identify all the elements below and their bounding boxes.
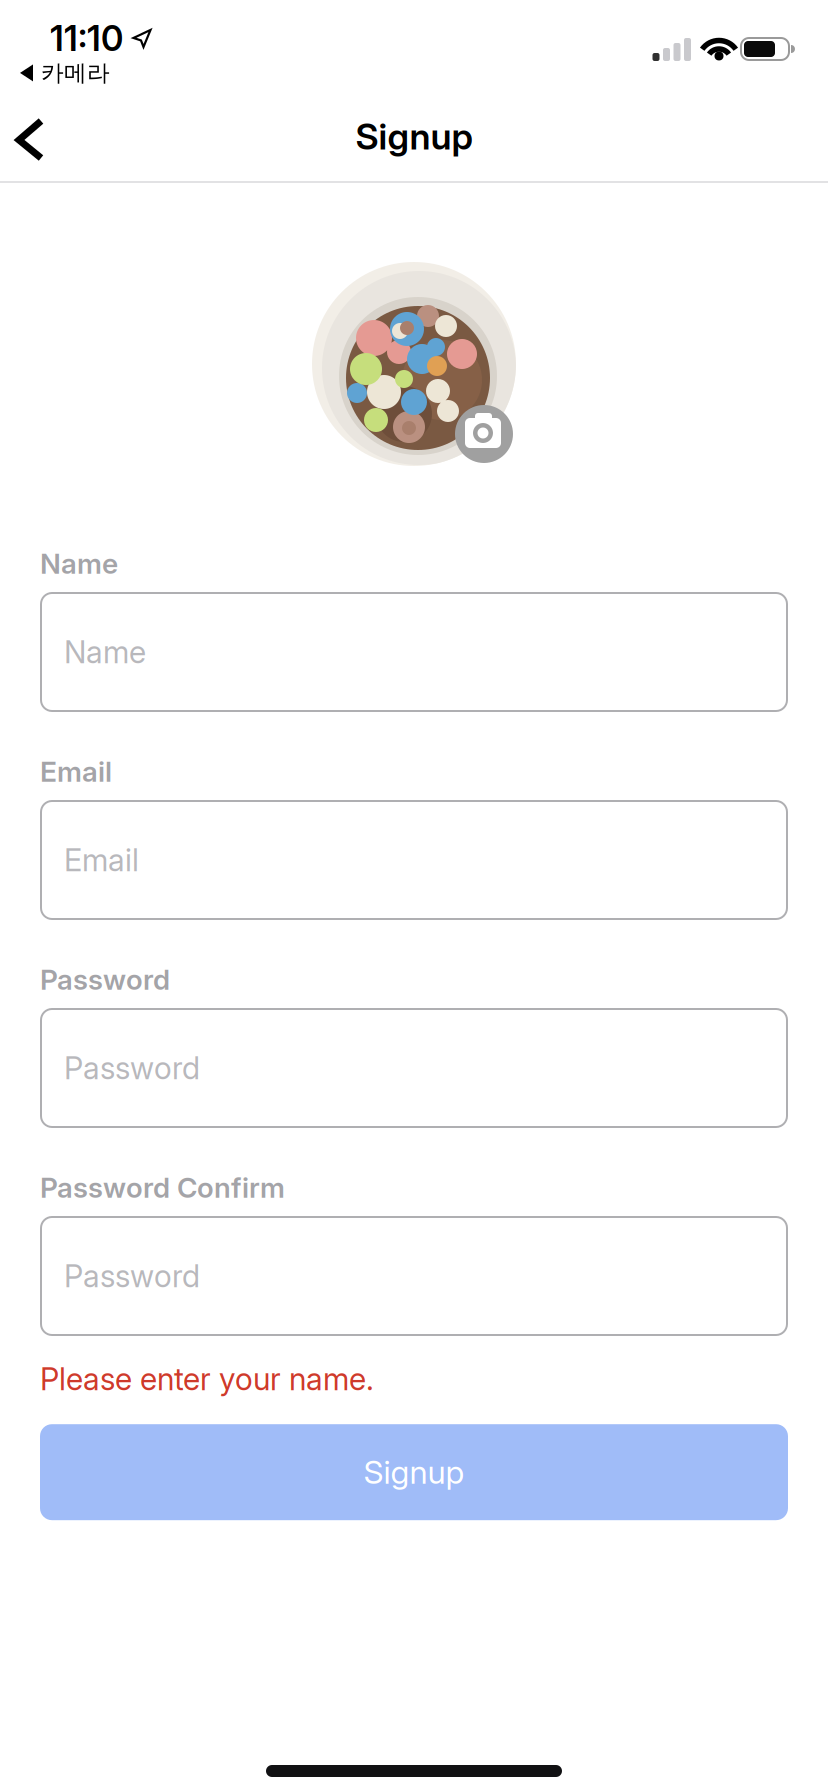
button[interactable]: Name [40, 592, 788, 712]
staticText: 11:10 [50, 18, 123, 59]
staticText: Name [40, 547, 118, 580]
button[interactable]: Back [0, 90, 70, 183]
staticText: Email [40, 755, 112, 788]
staticText: Signup [355, 115, 472, 158]
button[interactable]: Password [40, 1008, 788, 1128]
staticText: Email [64, 842, 139, 878]
staticText: 카메라 [41, 59, 110, 87]
staticText: Password [40, 963, 170, 996]
staticText: Password [64, 1258, 200, 1294]
button[interactable]: Email [40, 800, 788, 920]
button[interactable]: Change profile photo [312, 262, 516, 466]
button[interactable]: Password [40, 1216, 788, 1336]
staticText: Name [64, 634, 146, 670]
staticText: Please enter your name. [40, 1361, 374, 1397]
button[interactable]: 카메라 [0, 0, 110, 87]
button[interactable]: Signup [40, 1424, 788, 1520]
staticText: Password [64, 1050, 200, 1086]
staticText: Password Confirm [40, 1171, 285, 1204]
staticText: Signup [363, 1453, 464, 1491]
